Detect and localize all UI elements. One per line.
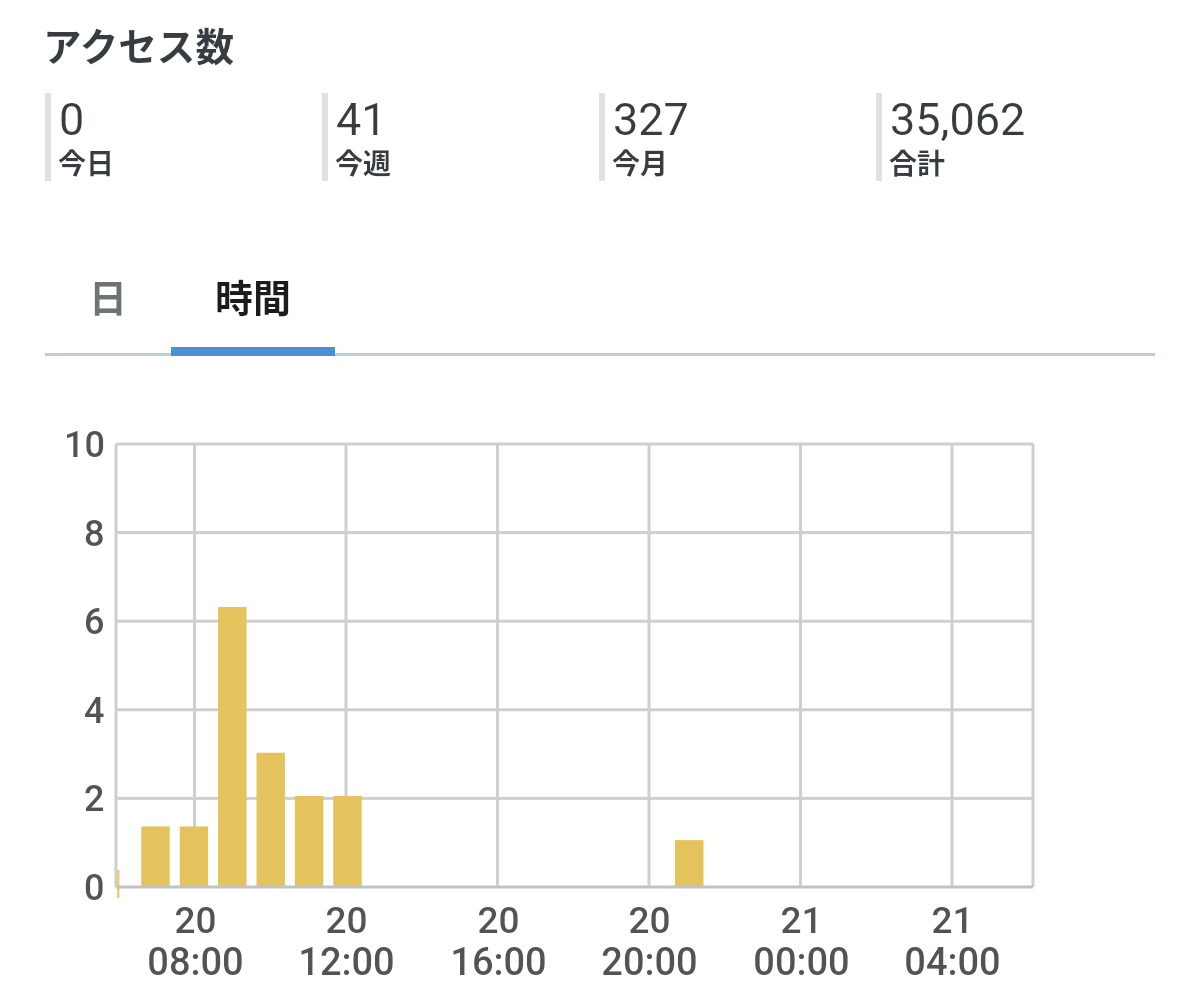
staticText: 合計 xyxy=(889,142,946,179)
staticText: 20 xyxy=(174,899,217,942)
staticText: 00:00 xyxy=(753,940,850,985)
staticText: 21 xyxy=(780,899,823,942)
staticText: 10 xyxy=(64,424,105,466)
staticText: 16:00 xyxy=(450,940,547,985)
staticText: 20 xyxy=(325,899,368,942)
staticText: 41 xyxy=(336,93,387,146)
staticText: 20 xyxy=(628,899,671,942)
staticText: 日 xyxy=(89,268,128,323)
staticText: 20:00 xyxy=(601,940,698,985)
button[interactable]: 時間 xyxy=(171,268,335,353)
button[interactable]: 35,062 xyxy=(876,93,1153,183)
staticText: 時間 xyxy=(215,268,292,323)
staticText: 4 xyxy=(84,690,105,732)
staticText: 0 xyxy=(84,867,105,909)
button[interactable]: 0 xyxy=(45,93,322,183)
staticText: 2 xyxy=(84,778,105,820)
staticText: 08:00 xyxy=(147,940,244,985)
staticText: 今週 xyxy=(335,142,392,179)
staticText: 今日 xyxy=(58,142,115,179)
staticText: アクセス数 xyxy=(43,16,235,72)
button[interactable]: 41 xyxy=(322,93,599,183)
staticText: 6 xyxy=(84,601,105,643)
staticText: 8 xyxy=(84,513,105,555)
staticText: 327 xyxy=(613,93,689,146)
staticText: 35,062 xyxy=(890,93,1026,146)
staticText: 今月 xyxy=(612,142,669,179)
staticText: 04:00 xyxy=(904,940,1001,985)
staticText: 21 xyxy=(931,899,974,942)
button[interactable]: 327 xyxy=(599,93,876,183)
staticText: 12:00 xyxy=(298,940,395,985)
button[interactable]: 日 xyxy=(45,268,171,353)
staticText: 0 xyxy=(59,93,85,146)
staticText: 20 xyxy=(477,899,520,942)
